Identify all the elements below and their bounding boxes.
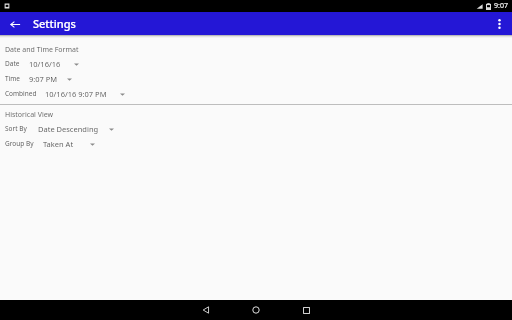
staticText: 10/16/16	[29, 59, 61, 69]
staticText: Date Descending	[38, 124, 99, 134]
button[interactable]: Open dropdown	[65, 73, 74, 85]
staticText: 10/16/16 9:07 PM	[45, 89, 107, 99]
button[interactable]: Open dropdown	[88, 138, 97, 150]
button[interactable]: Time	[0, 71, 512, 86]
button[interactable]: Sort By	[0, 121, 512, 136]
button[interactable]: Group By	[0, 136, 512, 151]
button[interactable]: Open dropdown	[118, 88, 127, 100]
staticText: Time	[5, 74, 23, 83]
button[interactable]: Recent apps	[281, 300, 331, 320]
staticText: Date and Time Format	[5, 45, 79, 55]
staticText: Settings	[33, 16, 76, 31]
button[interactable]: More options	[490, 15, 508, 33]
staticText: Taken At	[43, 139, 74, 149]
button[interactable]: Open dropdown	[72, 58, 81, 70]
staticText: 9:07 PM	[29, 74, 58, 84]
staticText: Combined	[5, 89, 39, 98]
staticText: Historical View	[5, 110, 54, 120]
staticText: Sort By	[5, 124, 32, 133]
staticText: Date	[5, 59, 23, 68]
staticText: Group By	[5, 139, 37, 148]
staticText: 9:07	[494, 1, 508, 11]
button[interactable]: Back	[181, 300, 231, 320]
button[interactable]: Date	[0, 56, 512, 71]
button[interactable]: Open dropdown	[107, 123, 116, 135]
button[interactable]: Back	[6, 15, 24, 33]
button[interactable]: Home	[231, 300, 281, 320]
button[interactable]: Combined	[0, 86, 512, 101]
